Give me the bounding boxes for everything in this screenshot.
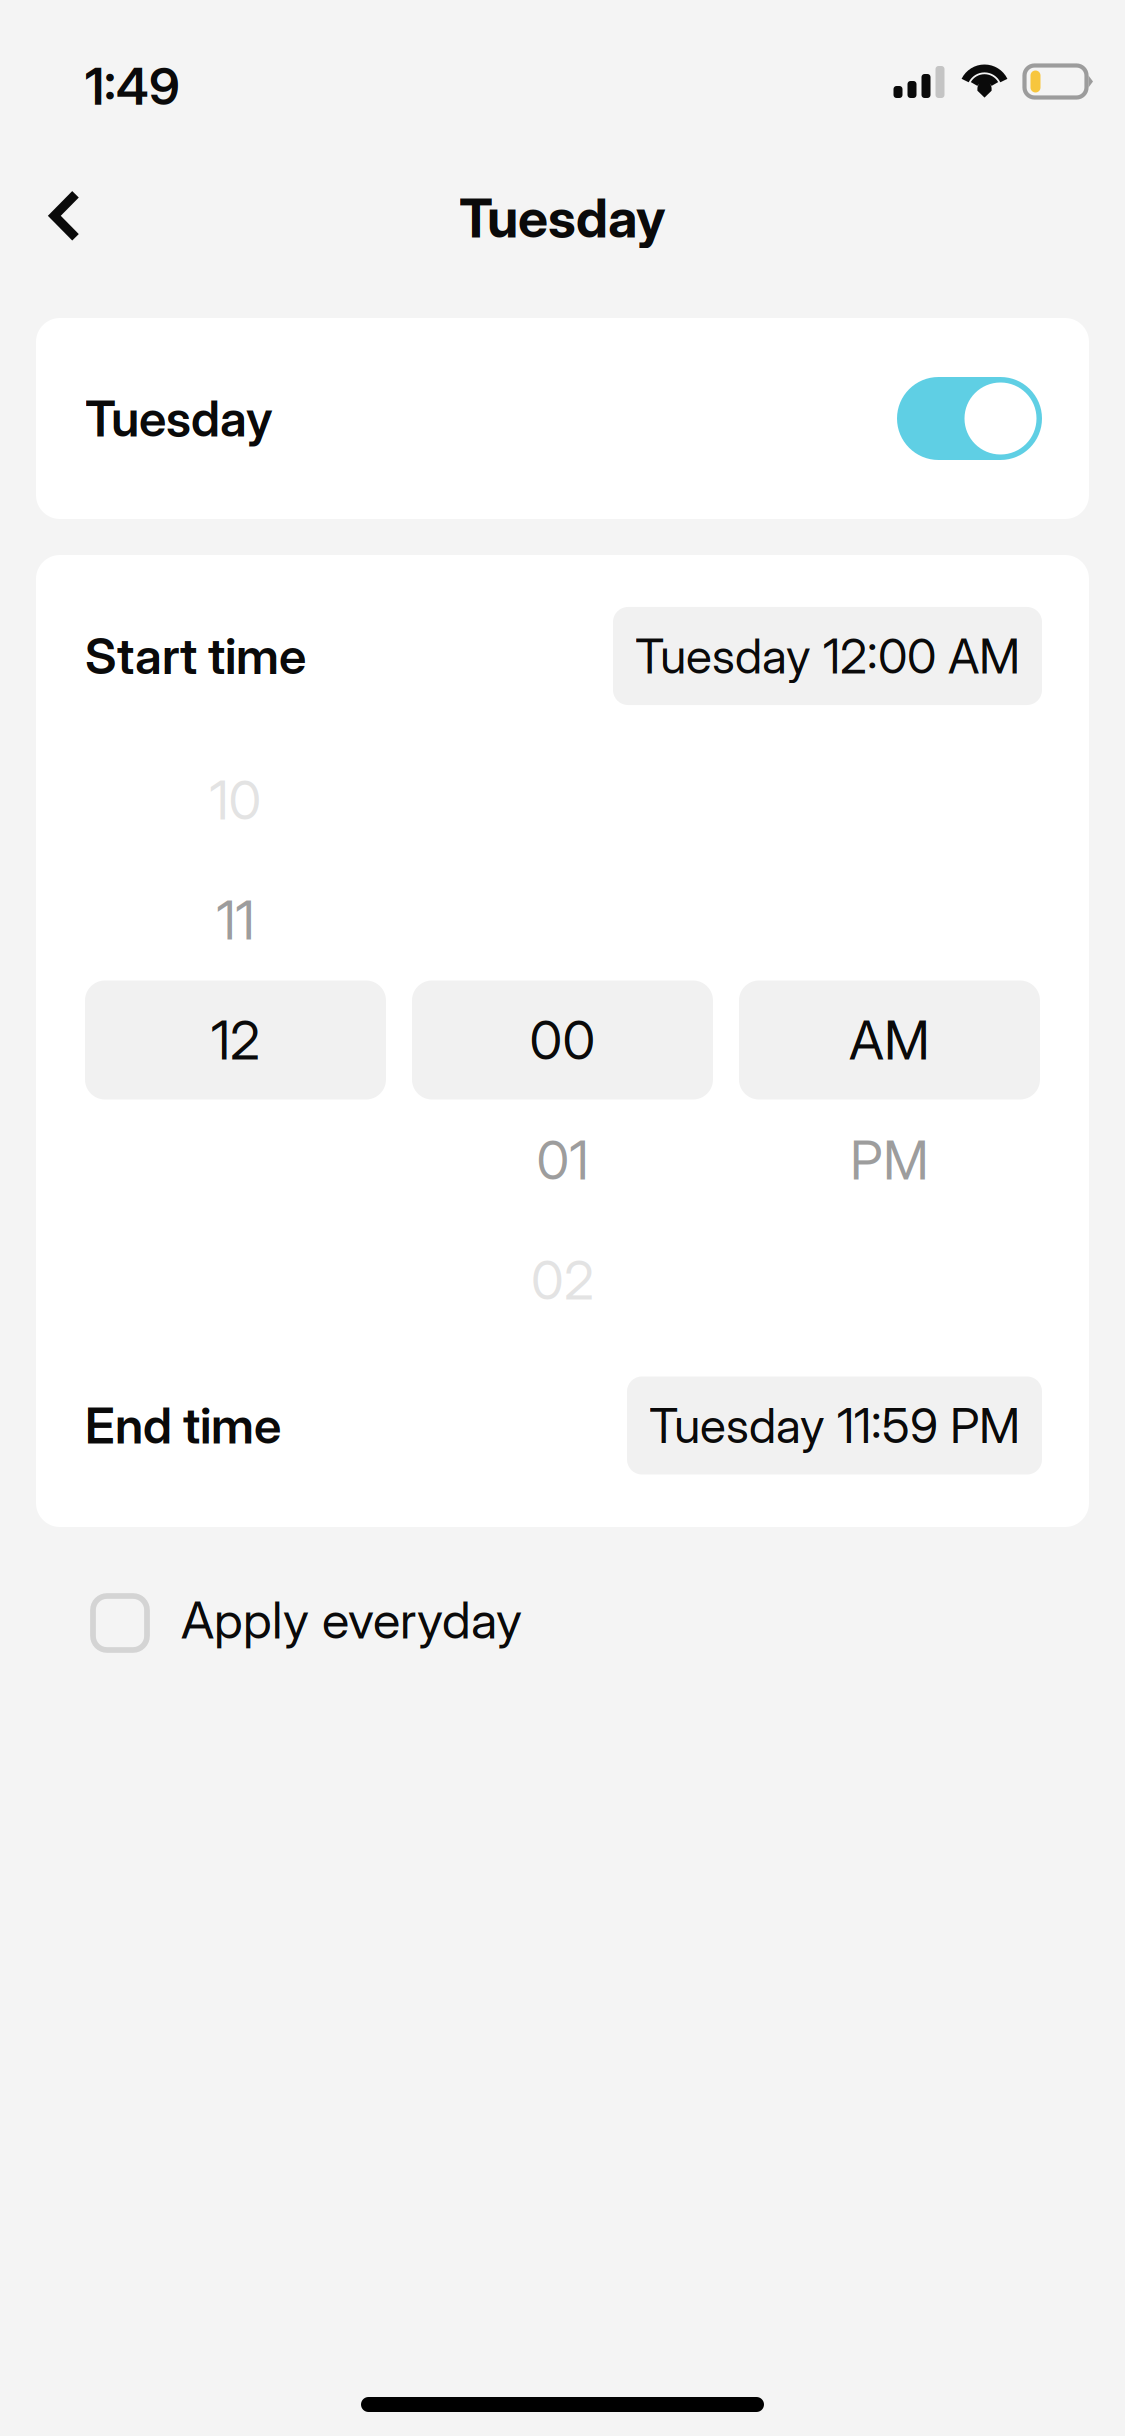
button[interactable]: Tuesday 11:59 PM bbox=[627, 1376, 1042, 1475]
button[interactable]: 01 bbox=[412, 1100, 713, 1220]
staticText: PM bbox=[850, 1128, 929, 1192]
button[interactable]: PM bbox=[739, 1100, 1040, 1220]
staticText: Start time bbox=[85, 626, 306, 686]
staticText: Tuesday bbox=[459, 186, 666, 250]
staticText: Apply everyday bbox=[181, 1589, 522, 1651]
staticText: 1:49 bbox=[85, 56, 180, 117]
button[interactable]: 02 bbox=[412, 1220, 713, 1340]
button[interactable]: 00 bbox=[412, 980, 713, 1100]
staticText: 11 bbox=[216, 888, 254, 952]
staticText: 00 bbox=[529, 1008, 595, 1072]
button[interactable]: Apply everyday bbox=[0, 1570, 1125, 1670]
button[interactable]: Back bbox=[17, 159, 115, 271]
button[interactable]: 10 bbox=[85, 740, 386, 860]
staticText: Tuesday bbox=[85, 389, 273, 448]
staticText: 02 bbox=[531, 1248, 594, 1312]
staticText: Tuesday 11:59 PM bbox=[649, 1396, 1020, 1455]
button[interactable]: AM bbox=[739, 980, 1040, 1100]
staticText: Tuesday 12:00 AM bbox=[635, 627, 1020, 685]
button[interactable]: Tuesday 12:00 AM bbox=[613, 607, 1042, 705]
staticText: 01 bbox=[536, 1128, 588, 1192]
staticText: AM bbox=[849, 1008, 930, 1072]
button[interactable]: Tuesday enabled bbox=[897, 377, 1042, 460]
staticText: 12 bbox=[211, 1008, 260, 1072]
button[interactable]: 11 bbox=[85, 860, 386, 980]
staticText: 10 bbox=[209, 768, 261, 832]
staticText: End time bbox=[85, 1396, 281, 1455]
button[interactable]: 12 bbox=[85, 980, 386, 1100]
